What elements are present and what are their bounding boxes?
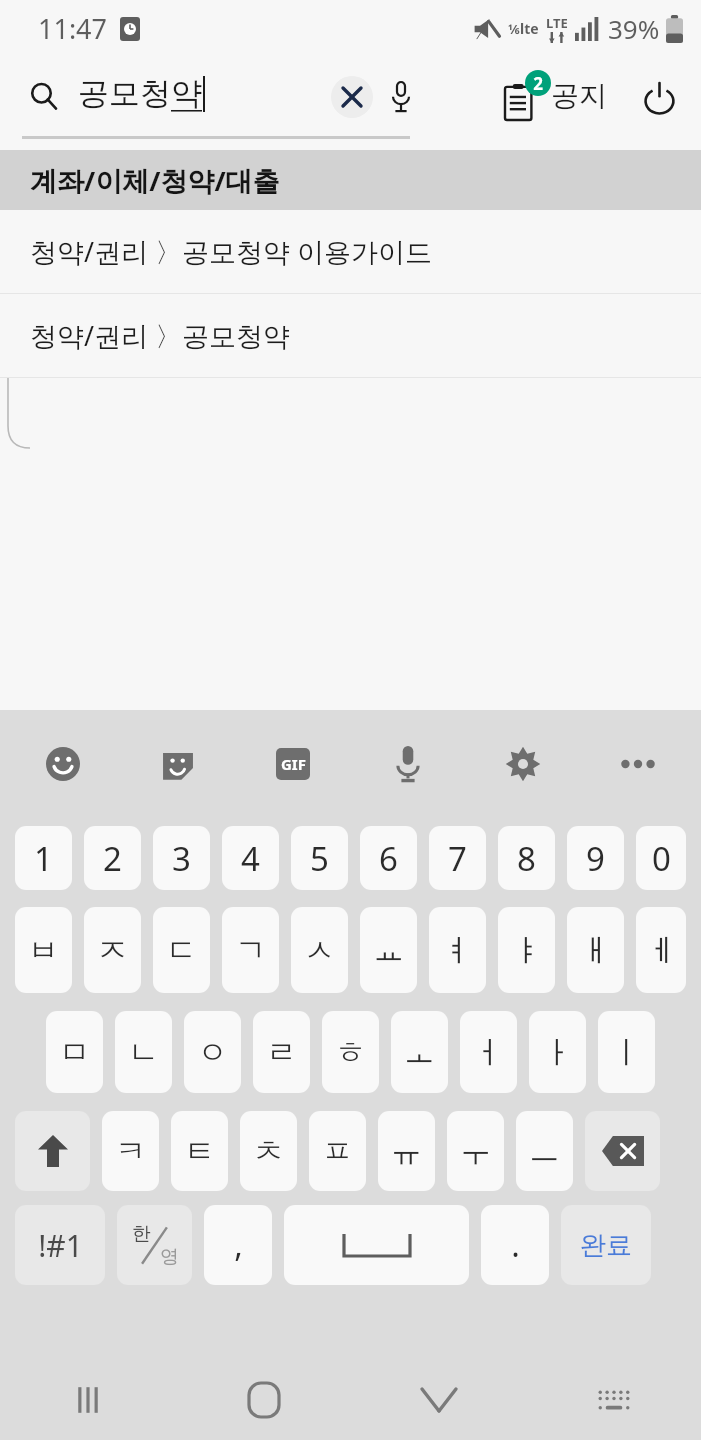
- button[interactable]: 2: [84, 826, 141, 890]
- button[interactable]: ㅗ: [391, 1011, 448, 1093]
- button[interactable]: ㅂ: [15, 907, 72, 993]
- button[interactable]: 2: [505, 70, 607, 120]
- button[interactable]: ㅜ: [447, 1111, 504, 1191]
- button[interactable]: ㄹ: [253, 1011, 310, 1093]
- button[interactable]: Keyboard settings: [494, 735, 552, 793]
- button[interactable]: Voice search: [380, 76, 422, 118]
- button[interactable]: Space: [284, 1205, 469, 1285]
- button[interactable]: Backspace: [585, 1111, 660, 1191]
- staticText: 한: [132, 1222, 151, 1246]
- staticText: 1: [34, 836, 53, 881]
- staticText: ㅔ: [646, 931, 677, 970]
- button[interactable]: Emoji: [34, 735, 92, 793]
- staticText: ㄴ: [128, 1033, 159, 1072]
- button[interactable]: .: [481, 1205, 549, 1285]
- staticText: ㅏ: [542, 1033, 573, 1072]
- staticText: GIF: [281, 754, 306, 774]
- button[interactable]: ㅣ: [598, 1011, 655, 1093]
- button[interactable]: Stickers: [149, 735, 207, 793]
- staticText: lte: [520, 19, 539, 38]
- staticText: 11:47: [38, 10, 108, 47]
- staticText: 7: [448, 836, 467, 881]
- button[interactable]: ㅇ: [184, 1011, 241, 1093]
- staticText: 계좌/이체/청약/대출: [30, 162, 280, 199]
- button[interactable]: 1: [15, 826, 72, 890]
- staticText: 9: [586, 836, 605, 881]
- button[interactable]: 청약/권리 〉공모청약: [0, 294, 701, 377]
- button[interactable]: GIF: [264, 735, 322, 793]
- staticText: ㅎ: [335, 1033, 366, 1072]
- staticText: 6: [379, 836, 398, 881]
- staticText: ㅛ: [373, 931, 404, 970]
- button[interactable]: ㅏ: [529, 1011, 586, 1093]
- button[interactable]: 4: [222, 826, 279, 890]
- button[interactable]: ㅍ: [309, 1111, 366, 1191]
- button[interactable]: ㅑ: [498, 907, 555, 993]
- button[interactable]: Power / Logout: [634, 74, 684, 124]
- staticText: 완료: [580, 1229, 632, 1262]
- staticText: ㅋ: [115, 1132, 146, 1171]
- button[interactable]: ㅊ: [240, 1111, 297, 1191]
- button[interactable]: ㅔ: [636, 907, 686, 993]
- staticText: ㅓ: [473, 1033, 504, 1072]
- button[interactable]: Clear query: [331, 76, 373, 118]
- button[interactable]: ㅋ: [102, 1111, 159, 1191]
- staticText: ㅡ: [529, 1132, 560, 1171]
- staticText: ㅕ: [442, 931, 473, 970]
- button[interactable]: 5: [291, 826, 348, 890]
- button[interactable]: ㅌ: [171, 1111, 228, 1191]
- button[interactable]: ㅎ: [322, 1011, 379, 1093]
- staticText: ㅁ: [59, 1033, 90, 1072]
- button[interactable]: More options: [609, 735, 667, 793]
- staticText: 4: [241, 836, 260, 881]
- button[interactable]: 3: [153, 826, 210, 890]
- button[interactable]: ㅅ: [291, 907, 348, 993]
- staticText: 3: [172, 836, 191, 881]
- staticText: 공지: [551, 78, 607, 113]
- button[interactable]: Voice input: [379, 735, 437, 793]
- button[interactable]: ㅕ: [429, 907, 486, 993]
- button[interactable]: ㅛ: [360, 907, 417, 993]
- button[interactable]: 9: [567, 826, 624, 890]
- button[interactable]: Recent apps: [0, 1360, 176, 1440]
- button[interactable]: Hide keyboard: [351, 1360, 526, 1440]
- button[interactable]: Home: [176, 1360, 351, 1440]
- button[interactable]: 완료: [561, 1205, 651, 1285]
- button[interactable]: Search: [22, 74, 66, 118]
- staticText: ㅗ: [404, 1033, 435, 1072]
- button[interactable]: !#1: [15, 1205, 105, 1285]
- staticText: ㄹ: [266, 1033, 297, 1072]
- staticText: ㄱ: [235, 931, 266, 970]
- button[interactable]: 7: [429, 826, 486, 890]
- button[interactable]: 0: [636, 826, 686, 890]
- staticText: ㅑ: [511, 931, 542, 970]
- button[interactable]: ㄴ: [115, 1011, 172, 1093]
- button[interactable]: ㄱ: [222, 907, 279, 993]
- button[interactable]: ㅡ: [516, 1111, 573, 1191]
- staticText: ㅊ: [253, 1132, 284, 1171]
- button[interactable]: 청약/권리 〉공모청약 이용가이드: [0, 210, 701, 293]
- staticText: 2: [103, 836, 122, 881]
- staticText: ㅌ: [184, 1132, 215, 1171]
- staticText: ㅠ: [391, 1132, 422, 1171]
- button[interactable]: ㅈ: [84, 907, 141, 993]
- staticText: ㅍ: [322, 1132, 353, 1171]
- button[interactable]: Change keyboard: [526, 1360, 701, 1440]
- staticText: ㅣ: [611, 1033, 642, 1072]
- staticText: ㄷ: [166, 931, 197, 970]
- button[interactable]: ㅐ: [567, 907, 624, 993]
- staticText: 1⁄6: [508, 20, 520, 38]
- button[interactable]: 6: [360, 826, 417, 890]
- button[interactable]: ㅓ: [460, 1011, 517, 1093]
- button[interactable]: ㄷ: [153, 907, 210, 993]
- button[interactable]: ㅁ: [46, 1011, 103, 1093]
- staticText: 8: [517, 836, 536, 881]
- staticText: 약: [171, 74, 202, 113]
- staticText: 2: [533, 72, 543, 95]
- button[interactable]: ㅠ: [378, 1111, 435, 1191]
- button[interactable]: Korean / English: [117, 1205, 192, 1285]
- button[interactable]: ,: [204, 1205, 272, 1285]
- button[interactable]: Shift: [15, 1111, 90, 1191]
- button[interactable]: 8: [498, 826, 555, 890]
- staticText: ㅂ: [28, 931, 59, 970]
